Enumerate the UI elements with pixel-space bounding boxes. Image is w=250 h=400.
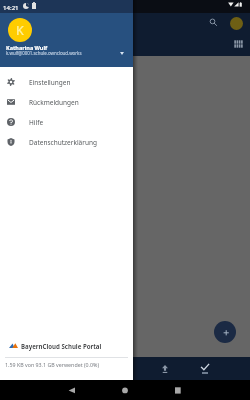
button[interactable]: Switch account bbox=[113, 44, 129, 60]
staticText: K bbox=[16, 22, 24, 39]
staticText: 1.59 KB von 93.1 GB verwendet (0.0%) bbox=[5, 361, 99, 368]
staticText: 14:21 bbox=[3, 3, 19, 11]
button[interactable]: Uploads bbox=[146, 357, 184, 380]
button[interactable]: Rückmeldungen bbox=[0, 92, 133, 112]
staticText: Datenschutzerklärung bbox=[29, 138, 97, 147]
button[interactable]: Einstellungen bbox=[0, 72, 133, 92]
button[interactable]: Account bbox=[228, 15, 245, 32]
staticText: k.wulf@0001.schule.owncloud.works bbox=[6, 50, 82, 56]
button[interactable]: BayernCloud Schule Portal bbox=[0, 341, 133, 356]
staticText: BayernCloud Schule Portal bbox=[21, 342, 102, 350]
staticText: Einstellungen bbox=[29, 78, 71, 87]
button[interactable]: Profile picture bbox=[8, 18, 32, 42]
button[interactable]: Hilfe bbox=[0, 112, 133, 132]
button[interactable]: Add bbox=[214, 321, 236, 343]
staticText: Katharina Wulf bbox=[6, 44, 48, 51]
staticText: Hilfe bbox=[29, 118, 44, 127]
button[interactable]: Search bbox=[205, 14, 222, 31]
button[interactable]: Grid view bbox=[230, 36, 246, 52]
button[interactable]: Tasks bbox=[186, 357, 224, 380]
staticText: Rückmeldungen bbox=[29, 98, 79, 107]
button[interactable]: Datenschutzerklärung bbox=[0, 132, 133, 152]
